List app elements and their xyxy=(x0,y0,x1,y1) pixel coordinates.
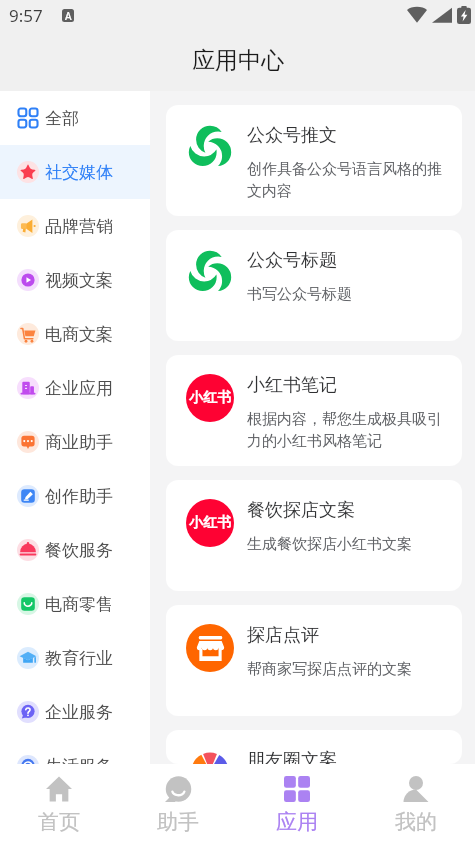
staticText: 餐饮服务 xyxy=(45,540,113,561)
button[interactable]: 餐饮服务 xyxy=(0,523,150,577)
staticText: 9:57 xyxy=(9,4,43,27)
staticText: 助手 xyxy=(157,809,199,835)
button[interactable]: 小红书 xyxy=(166,480,462,591)
button[interactable]: 教育行业 xyxy=(0,631,150,685)
button[interactable]: 企业服务 xyxy=(0,685,150,739)
button[interactable]: 小红书 xyxy=(166,355,462,466)
button[interactable]: 朋友圈文案 xyxy=(166,730,462,764)
staticText: 我的 xyxy=(395,809,437,835)
button[interactable]: 应用 xyxy=(237,764,356,844)
button[interactable]: 生活服务 xyxy=(0,739,150,793)
staticText: 朋友圈文案 xyxy=(247,749,337,764)
staticText: 企业应用 xyxy=(45,378,113,399)
staticText: 应用中心 xyxy=(192,46,284,75)
staticText: 创作具备公众号语言风格的推文内容 xyxy=(247,160,446,200)
button[interactable]: 社交媒体 xyxy=(0,145,150,199)
button[interactable]: 公众号标题 xyxy=(166,230,462,341)
staticText: 帮商家写探店点评的文案 xyxy=(247,660,412,679)
staticText: 探店点评 xyxy=(247,624,319,647)
staticText: 企业服务 xyxy=(45,702,113,723)
staticText: 电商文案 xyxy=(45,324,113,345)
staticText: 小红书笔记 xyxy=(247,374,337,397)
staticText: 品牌营销 xyxy=(45,216,113,237)
staticText: 首页 xyxy=(38,809,80,835)
button[interactable]: 全部 xyxy=(0,91,150,145)
staticText: 公众号标题 xyxy=(247,249,337,272)
button[interactable]: 助手 xyxy=(118,764,237,844)
staticText: 教育行业 xyxy=(45,648,113,669)
staticText: 全部 xyxy=(45,108,79,129)
button[interactable]: 企业应用 xyxy=(0,361,150,415)
staticText: 创作助手 xyxy=(45,486,113,507)
staticText: 社交媒体 xyxy=(45,162,113,183)
staticText: 小红书 xyxy=(189,514,231,532)
staticText: 小红书 xyxy=(189,389,231,407)
staticText: 应用 xyxy=(276,809,318,835)
staticText: 商业助手 xyxy=(45,432,113,453)
staticText: 书写公众号标题 xyxy=(247,285,352,304)
staticText: 视频文案 xyxy=(45,270,113,291)
staticText: A xyxy=(65,9,72,22)
button[interactable]: 品牌营销 xyxy=(0,199,150,253)
staticText: 根据内容，帮您生成极具吸引力的小红书风格笔记 xyxy=(247,410,446,450)
button[interactable]: 创作助手 xyxy=(0,469,150,523)
staticText: 生成餐饮探店小红书文案 xyxy=(247,535,412,554)
button[interactable]: 首页 xyxy=(0,764,118,844)
staticText: 生活服务 xyxy=(45,756,113,777)
button[interactable]: 视频文案 xyxy=(0,253,150,307)
staticText: 餐饮探店文案 xyxy=(247,499,355,522)
staticText: 公众号推文 xyxy=(247,124,337,147)
button[interactable]: 探店点评 xyxy=(166,605,462,716)
button[interactable]: 商业助手 xyxy=(0,415,150,469)
staticText: 电商零售 xyxy=(45,594,113,615)
button[interactable]: 公众号推文 xyxy=(166,105,462,216)
button[interactable]: 电商文案 xyxy=(0,307,150,361)
button[interactable]: 电商零售 xyxy=(0,577,150,631)
button[interactable]: 我的 xyxy=(356,764,475,844)
